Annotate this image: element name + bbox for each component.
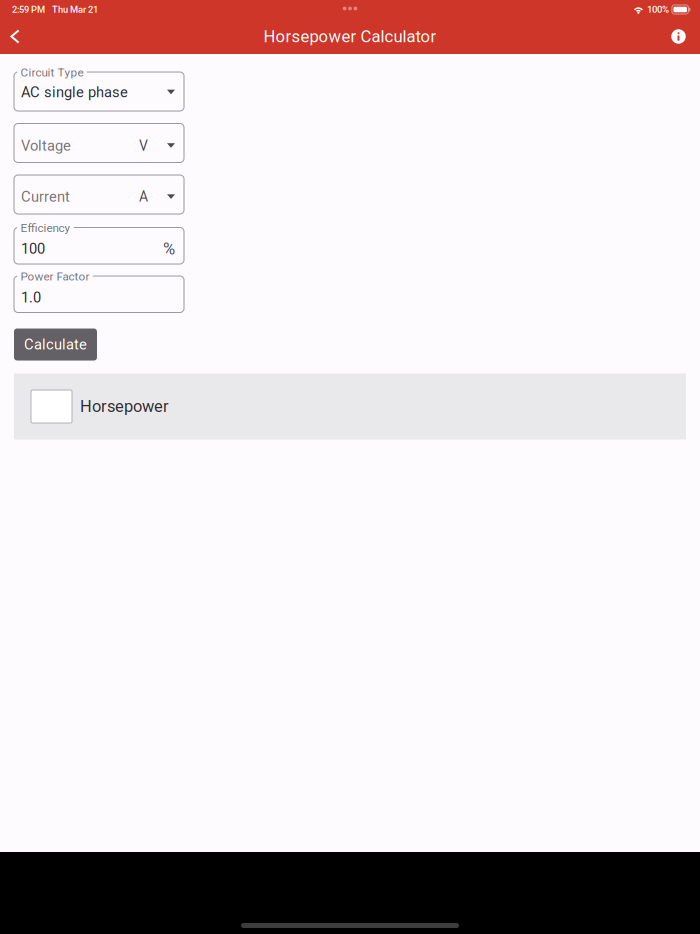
staticText: Thu Mar 21 — [52, 4, 98, 15]
staticText: Horsepower Calculator — [263, 27, 436, 46]
staticText: A — [139, 189, 148, 205]
staticText: 1.0 — [21, 289, 41, 306]
staticText: Power Factor — [20, 270, 89, 283]
button[interactable]: Calculate — [14, 328, 97, 360]
staticText: V — [139, 137, 148, 154]
staticText: Efficiency — [20, 221, 70, 235]
staticText: Current — [21, 188, 70, 205]
staticText: Voltage — [21, 137, 71, 154]
staticText: Horsepower — [80, 397, 169, 416]
staticText: 100% — [647, 4, 669, 15]
staticText: % — [163, 239, 175, 258]
button[interactable]: Back — [0, 19, 34, 54]
staticText: Calculate — [24, 336, 87, 353]
staticText: 100 — [21, 240, 45, 257]
staticText: 2:59 PM — [12, 4, 45, 15]
staticText: Circuit Type — [20, 66, 83, 79]
staticText: AC single phase — [21, 84, 128, 101]
button[interactable]: Information — [657, 19, 700, 54]
